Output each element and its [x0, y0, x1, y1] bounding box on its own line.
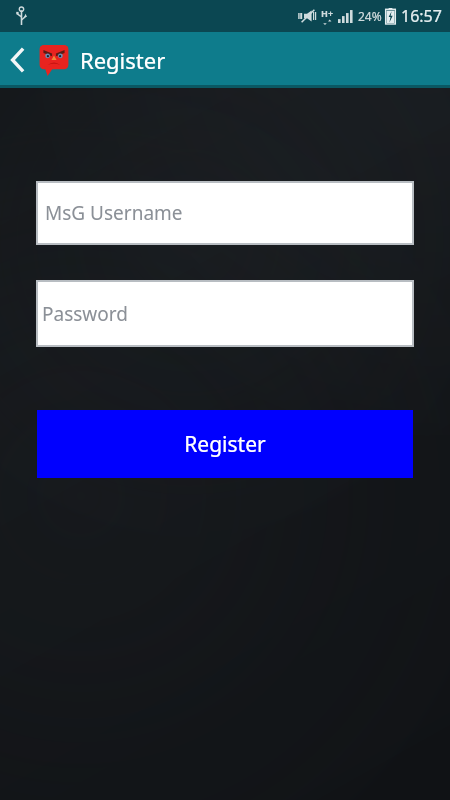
button[interactable]: Password: [38, 282, 412, 345]
staticText: MsG Username: [45, 200, 183, 226]
staticText: 24%: [358, 8, 382, 24]
button[interactable]: Register: [37, 410, 413, 478]
button[interactable]: Back: [0, 32, 36, 88]
staticText: H+: [321, 7, 334, 19]
staticText: Register: [80, 45, 166, 75]
staticText: Register: [184, 430, 266, 459]
staticText: 16:57: [401, 5, 442, 27]
button[interactable]: MsG Username: [38, 183, 412, 243]
staticText: Password: [42, 301, 128, 327]
